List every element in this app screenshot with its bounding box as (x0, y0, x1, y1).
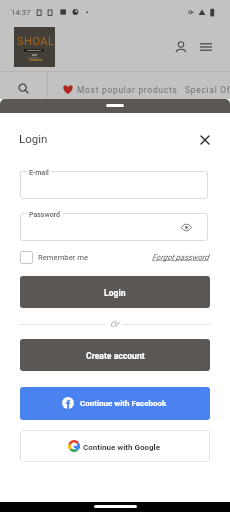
button[interactable]: Close (194, 129, 215, 150)
staticText: Or (110, 319, 119, 329)
staticText: 14:37 (11, 8, 31, 17)
button[interactable] (20, 171, 208, 199)
button[interactable]: Forgot password (152, 253, 209, 262)
button[interactable]: Show password (179, 220, 193, 234)
staticText: Create account (86, 351, 145, 361)
button[interactable]: Continue with Facebook (20, 387, 210, 420)
button[interactable] (20, 213, 208, 241)
staticText: SHOAL (17, 35, 55, 48)
staticText: Remember me (38, 253, 89, 262)
button[interactable]: Menu (195, 36, 217, 58)
button[interactable]: Continue with Google (20, 430, 210, 462)
staticText: Most popular products (77, 85, 178, 95)
button[interactable]: Shoal logo (14, 27, 55, 67)
button[interactable]: Remember me (20, 251, 33, 264)
button[interactable]: Create account (20, 339, 210, 371)
staticText: Continue with Facebook (80, 399, 167, 408)
button[interactable]: Login (20, 276, 210, 308)
staticText: Continue with Google (83, 443, 161, 452)
staticText: Login (104, 288, 126, 298)
button[interactable]: Account (170, 36, 192, 58)
staticText: Password (29, 211, 61, 219)
staticText: Login (19, 132, 48, 145)
staticText: E-mail (29, 169, 49, 177)
staticText: Special Of (185, 85, 230, 95)
button[interactable]: Search (12, 77, 34, 99)
